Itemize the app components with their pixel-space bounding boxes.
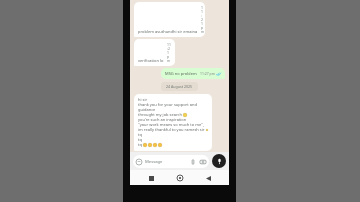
- staticText: problem avuthundhi sir emaina: [138, 29, 198, 34]
- button[interactable]: hi sir: [134, 94, 212, 151]
- button[interactable]: Emoji: [133, 155, 209, 168]
- button[interactable]: MSG no problem: [161, 68, 225, 79]
- staticText: tq: [138, 137, 142, 142]
- staticText: throught my job search: [138, 112, 182, 117]
- staticText: 11:21 pm: [167, 42, 171, 63]
- button[interactable]: Voice message: [212, 154, 226, 168]
- staticText: thank you for your support and guidance: [138, 102, 208, 112]
- other: Emoji: [136, 159, 142, 165]
- button[interactable]: problem avuthundhi sir emaina: [134, 2, 205, 37]
- staticText: 11:27 pm: [200, 71, 215, 76]
- button[interactable]: Back: [201, 171, 215, 185]
- staticText: "your work means so much to me",: [138, 122, 204, 127]
- staticText: im really thankful to you ramesh sir: [138, 127, 205, 132]
- button[interactable]: verification lo: [134, 39, 175, 66]
- staticText: Message: [145, 159, 163, 165]
- button[interactable]: Recent apps: [144, 171, 158, 185]
- staticText: tq: [138, 142, 142, 147]
- staticText: you're such an inspiration: [138, 117, 187, 122]
- other: Camera: [200, 159, 206, 165]
- staticText: MSG no problem: [165, 71, 197, 76]
- button[interactable]: Home: [173, 171, 187, 185]
- staticText: verification lo: [138, 58, 164, 63]
- staticText: tq: [138, 132, 142, 137]
- staticText: 24 August 2025: [166, 84, 193, 89]
- staticText: hi sir: [138, 97, 148, 102]
- other: Attach: [190, 159, 196, 165]
